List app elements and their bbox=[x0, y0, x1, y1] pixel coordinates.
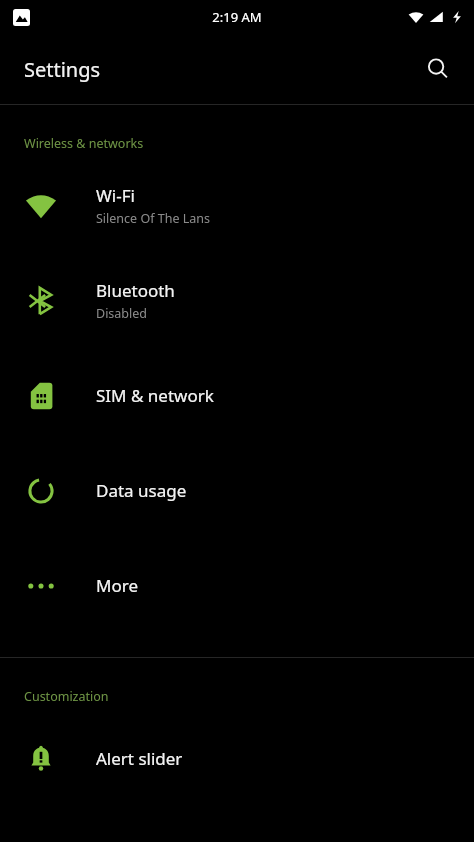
staticText: Wireless & networks bbox=[24, 135, 144, 152]
staticText: More bbox=[96, 574, 138, 597]
staticText: Data usage bbox=[96, 479, 187, 502]
staticText: Customization bbox=[24, 688, 109, 705]
staticText: Settings bbox=[24, 56, 101, 83]
button[interactable]: Data usage bbox=[0, 443, 474, 538]
button[interactable]: SIM & network bbox=[0, 348, 474, 443]
button[interactable]: Search bbox=[414, 45, 462, 93]
button[interactable]: Wi-Fi bbox=[0, 158, 474, 253]
button[interactable]: More bbox=[0, 538, 474, 633]
staticText: 2:19 AM bbox=[212, 8, 262, 26]
staticText: SIM & network bbox=[96, 384, 214, 407]
staticText: Silence Of The Lans bbox=[96, 210, 210, 227]
staticText: Wi-Fi bbox=[96, 184, 135, 207]
button[interactable]: Bluetooth bbox=[0, 253, 474, 348]
button[interactable]: Alert slider bbox=[0, 711, 474, 806]
staticText: Alert slider bbox=[96, 747, 183, 770]
staticText: Disabled bbox=[96, 305, 148, 322]
staticText: Bluetooth bbox=[96, 279, 175, 302]
